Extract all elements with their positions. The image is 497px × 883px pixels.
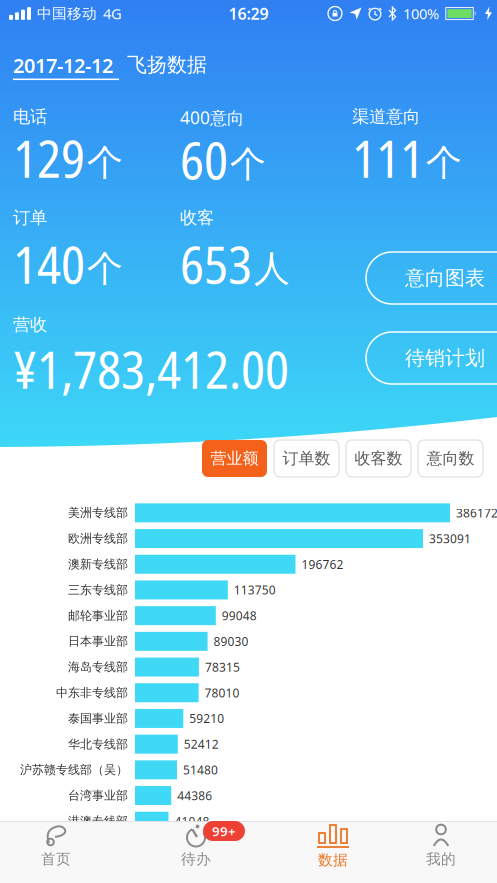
staticText: 华北专线部	[68, 737, 128, 751]
staticText: 653	[180, 229, 252, 299]
staticText: 台湾事业部	[68, 788, 128, 803]
staticText: 营收	[13, 314, 47, 335]
staticText: 113750	[234, 582, 276, 598]
button[interactable]: 首页	[41, 824, 71, 868]
staticText: 收客	[180, 207, 214, 228]
button[interactable]: 2017-12-12	[13, 52, 119, 80]
staticText: 中东非专线部	[56, 685, 128, 700]
staticText: 100%	[403, 4, 439, 23]
staticText: 港澳专线部	[68, 814, 128, 829]
staticText: 三东专线部	[68, 583, 128, 597]
staticText: 意向图表	[405, 266, 485, 290]
button[interactable]: 待销计划	[366, 332, 497, 384]
staticText: 泰国事业部	[68, 711, 128, 726]
button[interactable]: 收客数	[346, 440, 411, 477]
staticText: 140	[13, 229, 85, 299]
staticText: 16:29	[228, 3, 268, 24]
staticText: 51480	[183, 762, 218, 778]
staticText: 99048	[222, 608, 257, 624]
button[interactable]: 我的	[426, 824, 456, 868]
staticText: 个	[87, 246, 123, 291]
staticText: 电话	[13, 106, 47, 127]
staticText: 111	[352, 123, 424, 193]
staticText: 353091	[429, 531, 471, 546]
staticText: 日本事业部	[68, 634, 128, 649]
staticText: 60	[180, 125, 228, 194]
button[interactable]: 订单数	[274, 440, 339, 477]
staticText: 首页	[41, 850, 71, 868]
staticText: 订单	[13, 207, 47, 228]
staticText: 个	[230, 142, 266, 186]
staticText: 飞扬数据	[127, 52, 207, 77]
staticText: 78010	[205, 685, 240, 701]
staticText: 44386	[177, 788, 212, 803]
button[interactable]: 待办	[181, 824, 211, 868]
button[interactable]: 意向图表	[366, 252, 497, 304]
staticText: 欧洲专线部	[68, 531, 128, 546]
staticText: 营业额	[210, 449, 258, 468]
staticText: ¥1,783,412.00	[13, 334, 289, 404]
staticText: 196762	[301, 556, 343, 572]
staticText: 400意向	[180, 106, 244, 129]
staticText: 个	[87, 140, 123, 185]
staticText: 78315	[205, 659, 240, 675]
staticText: 待办	[181, 850, 211, 868]
staticText: 美洲专线部	[68, 505, 128, 520]
staticText: 4G	[103, 4, 122, 23]
staticText: 待销计划	[405, 346, 485, 370]
staticText: 中国移动	[37, 4, 97, 22]
staticText: 52412	[184, 736, 219, 752]
staticText: 人	[254, 246, 290, 291]
button[interactable]: 意向数	[418, 440, 483, 477]
button[interactable]: 营业额	[202, 440, 267, 477]
staticText: 129	[13, 123, 85, 193]
staticText: 海岛专线部	[68, 660, 128, 674]
staticText: 意向数	[426, 449, 474, 468]
staticText: 沪苏赣专线部（吴）	[20, 762, 128, 777]
staticText: 89030	[214, 633, 249, 649]
staticText: 41048	[174, 813, 209, 829]
staticText: 386172	[456, 505, 497, 521]
staticText: 订单数	[282, 449, 330, 468]
staticText: 邮轮事业部	[68, 608, 128, 623]
staticText: 99+	[212, 822, 236, 840]
staticText: 个	[426, 140, 462, 185]
staticText: 59210	[189, 710, 224, 726]
staticText: 渠道意向	[352, 106, 420, 127]
staticText: 我的	[426, 850, 456, 868]
staticText: 2017-12-12	[13, 52, 113, 79]
staticText: 数据	[318, 851, 348, 869]
staticText: 澳新专线部	[68, 557, 128, 572]
staticText: 收客数	[354, 449, 402, 468]
button[interactable]: 数据	[317, 824, 349, 869]
